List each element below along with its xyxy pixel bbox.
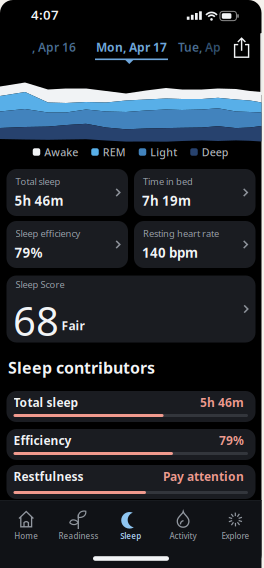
- staticText: Sleep Score: [15, 278, 64, 291]
- staticText: Awake: [44, 145, 78, 159]
- button[interactable]: Sleep: [105, 503, 157, 543]
- staticText: Ap: [202, 39, 221, 55]
- button[interactable]: Total sleep: [6, 169, 128, 216]
- button[interactable]: , Apr 16: [0, 39, 76, 55]
- button[interactable]: Home: [0, 503, 52, 543]
- staticText: Time in bed: [143, 175, 193, 188]
- staticText: Light: [150, 145, 177, 159]
- staticText: Total sleep: [13, 394, 78, 410]
- button[interactable]: Restfulness: [6, 465, 255, 499]
- staticText: Sleep: [120, 531, 141, 541]
- button[interactable]: Efficiency: [6, 429, 255, 460]
- button[interactable]: Tue,: [178, 39, 238, 55]
- button[interactable]: Resting heart rate: [134, 221, 255, 268]
- staticText: Resting heart rate: [143, 227, 219, 240]
- staticText: Sleep efficiency: [15, 227, 80, 240]
- button[interactable]: Explore: [209, 503, 261, 543]
- button[interactable]: Share: [230, 35, 254, 61]
- staticText: 7h 19m: [142, 192, 191, 209]
- button[interactable]: Readiness: [52, 503, 104, 543]
- staticText: Home: [14, 531, 38, 541]
- staticText: 79%: [219, 432, 244, 448]
- staticText: Fair: [61, 317, 84, 333]
- staticText: 5h 46m: [14, 192, 63, 209]
- staticText: 68: [13, 294, 59, 347]
- staticText: Mon, Apr 17: [96, 39, 167, 55]
- button[interactable]: Time in bed: [134, 169, 255, 216]
- staticText: Readiness: [58, 531, 98, 541]
- staticText: Activity: [170, 531, 197, 541]
- staticText: Pay attention: [163, 468, 244, 484]
- button[interactable]: Sleep efficiency: [6, 221, 128, 268]
- staticText: Sleep contributors: [8, 357, 155, 378]
- staticText: Deep: [202, 145, 229, 159]
- staticText: Total sleep: [15, 175, 60, 188]
- staticText: Tue,: [178, 39, 202, 55]
- staticText: Efficiency: [13, 432, 71, 448]
- staticText: 5h 46m: [200, 394, 244, 410]
- staticText: , Apr 16: [32, 39, 76, 55]
- staticText: Restfulness: [13, 468, 83, 484]
- button[interactable]: Activity: [157, 503, 209, 543]
- staticText: 4:07: [31, 6, 59, 23]
- button[interactable]: Total sleep: [6, 391, 255, 422]
- staticText: Explore: [221, 531, 249, 541]
- button[interactable]: Sleep Score: [6, 275, 255, 342]
- staticText: 140 bpm: [142, 244, 198, 261]
- button[interactable]: Mon, Apr 17: [96, 39, 167, 55]
- staticText: REM: [103, 145, 126, 159]
- staticText: 79%: [14, 244, 42, 261]
